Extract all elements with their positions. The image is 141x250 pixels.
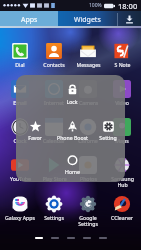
button[interactable]: Chrome bbox=[71, 118, 105, 144]
button[interactable]: Clock bbox=[3, 118, 37, 144]
staticText: Play Store bbox=[42, 175, 67, 182]
button[interactable]: Phone Boost bbox=[55, 120, 89, 141]
staticText: Lock bbox=[66, 98, 78, 105]
staticText: S Note bbox=[114, 61, 131, 68]
staticText: Settings bbox=[44, 214, 64, 221]
button[interactable]: Calendar bbox=[37, 118, 71, 144]
staticText: Setting bbox=[99, 134, 117, 141]
button[interactable]: Contacts bbox=[37, 42, 71, 68]
staticText: Samsung Hub bbox=[111, 175, 134, 188]
staticText: Internet bbox=[44, 99, 64, 106]
button[interactable]: Lock bbox=[55, 84, 89, 105]
button[interactable]: Internet bbox=[37, 80, 71, 106]
staticText: Calendar bbox=[43, 137, 65, 144]
button[interactable]: YouTube bbox=[3, 156, 37, 182]
staticText: Chrome bbox=[78, 137, 98, 144]
staticText: Contacts bbox=[43, 61, 65, 68]
button[interactable]: Apps bbox=[0, 11, 58, 28]
button[interactable]: Dial bbox=[3, 42, 37, 68]
staticText: Home bbox=[65, 168, 80, 175]
button[interactable]: Google Settings bbox=[71, 195, 105, 227]
staticText: 100% bbox=[89, 2, 102, 9]
button[interactable]: Downloaded apps bbox=[117, 11, 141, 28]
button[interactable]: Video bbox=[105, 80, 139, 106]
button[interactable]: Galaxy Apps bbox=[3, 195, 37, 221]
staticText: Dial bbox=[15, 61, 25, 68]
staticText: Clock bbox=[13, 137, 27, 144]
staticText: Video bbox=[115, 99, 129, 106]
button[interactable]: Messages bbox=[71, 42, 105, 68]
button[interactable]: Play Store bbox=[37, 156, 71, 182]
staticText: Favor bbox=[28, 134, 42, 141]
staticText: Google Settings bbox=[78, 214, 98, 227]
staticText: Messages bbox=[76, 61, 101, 68]
staticText: Apps bbox=[21, 15, 38, 25]
button[interactable]: Settings bbox=[37, 195, 71, 221]
button[interactable]: S Note bbox=[105, 42, 139, 68]
staticText: 18:00 bbox=[118, 1, 138, 11]
button[interactable]: Samsung Hub bbox=[105, 156, 139, 188]
button[interactable]: Email bbox=[3, 80, 37, 106]
staticText: Galaxy Apps bbox=[5, 214, 35, 221]
button[interactable]: Favor bbox=[18, 120, 52, 141]
button[interactable]: Maps bbox=[105, 118, 139, 144]
button[interactable]: CCleaner bbox=[105, 195, 139, 221]
button[interactable]: Home bbox=[55, 154, 89, 175]
button[interactable]: Camera bbox=[71, 80, 105, 106]
button[interactable]: Widgets bbox=[58, 11, 141, 28]
staticText: CCleaner bbox=[111, 214, 133, 221]
staticText: Camera bbox=[79, 99, 98, 106]
staticText: Email bbox=[13, 99, 27, 106]
staticText: YouTube bbox=[10, 175, 31, 182]
button[interactable]: Photos bbox=[71, 156, 105, 182]
staticText: Phone Boost bbox=[57, 134, 88, 141]
staticText: Widgets bbox=[74, 15, 101, 25]
button[interactable]: Setting bbox=[91, 120, 125, 141]
staticText: Maps bbox=[115, 137, 129, 144]
staticText: Photos bbox=[80, 175, 97, 182]
